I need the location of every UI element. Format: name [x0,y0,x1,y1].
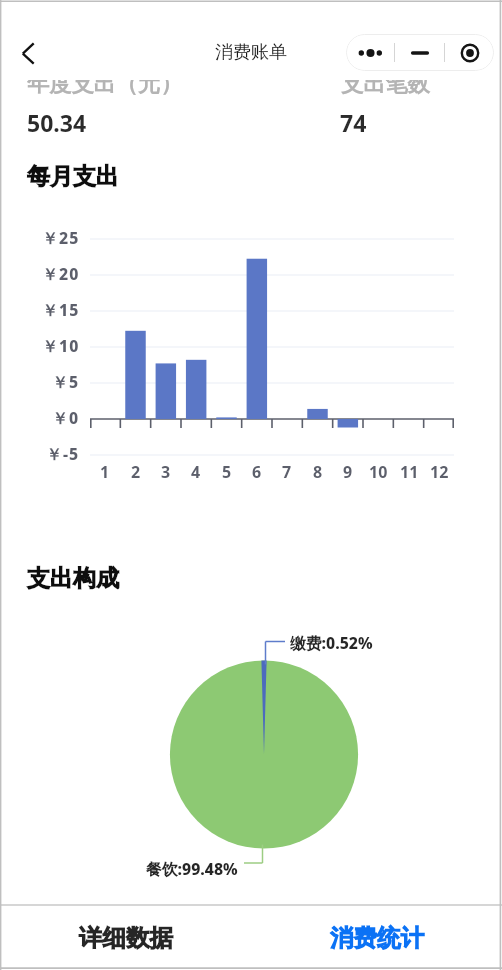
staticText: 2 [131,461,141,483]
staticText: 74 [340,107,367,138]
staticText: 12 [430,461,449,483]
staticText: 年度支出（元） [27,80,183,98]
staticText: 详细数据 [79,923,173,953]
staticText: 8 [313,461,323,483]
staticText: 6 [252,461,262,483]
button[interactable]: Close [445,34,494,71]
staticText: 5 [222,461,232,483]
button[interactable]: 消费统计 [251,906,502,970]
button[interactable]: Minimize [395,34,444,71]
button[interactable]: Back [4,32,48,75]
staticText: 3 [161,461,171,483]
staticText: ￥20 [42,263,80,285]
staticText: 4 [191,461,201,483]
staticText: ￥5 [52,371,80,393]
staticText: ￥-5 [46,443,80,465]
staticText: 11 [400,461,419,483]
staticText: 缴费:0.52% [290,632,373,654]
staticText: ￥15 [42,299,80,321]
staticText: 消费账单 [215,41,287,64]
button[interactable]: 详细数据 [0,906,251,970]
staticText: 9 [343,461,353,483]
staticText: 7 [282,461,292,483]
staticText: ￥10 [42,335,80,357]
staticText: 消费统计 [330,923,424,953]
staticText: 支出构成 [27,564,119,593]
staticText: ￥25 [42,227,80,249]
staticText: 50.34 [27,107,87,138]
staticText: 每月支出 [27,162,119,191]
staticText: 餐饮:99.48% [146,858,238,880]
staticText: ￥0 [52,407,80,429]
button[interactable]: More options [346,34,394,71]
staticText: 支出笔数 [341,80,430,98]
staticText: 1 [100,461,110,483]
staticText: 10 [369,461,388,483]
